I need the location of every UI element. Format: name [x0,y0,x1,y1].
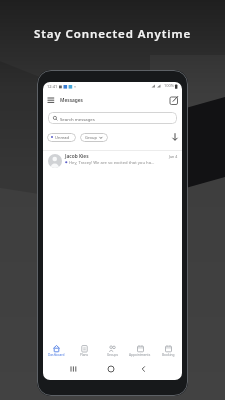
staticText: Groups [107,353,118,357]
staticText: Stay Connected Anytime [0,26,225,42]
button[interactable]: Dashboard [43,344,70,360]
button[interactable] [45,94,57,106]
button[interactable]: Plans [70,344,98,360]
staticText: Jun 4 [169,154,178,159]
staticText: Search messages [60,116,95,122]
button[interactable]: Jacob Kies [43,150,182,170]
staticText: Dashboard [48,353,65,357]
staticText: Jacob Kies [65,153,89,160]
staticText: Hey, Tracey! We are so excited that you … [69,160,155,166]
staticText: Plans [80,353,89,357]
button[interactable]: Unread [47,133,76,142]
button[interactable]: Group [80,133,108,142]
button[interactable]: Booking [154,344,182,360]
button[interactable]: Search messages [48,112,177,124]
staticText: Unread [55,135,69,140]
button[interactable] [168,94,180,106]
staticText: Appointments [129,353,151,357]
button[interactable]: Groups [98,344,126,360]
staticText: Messages [60,97,83,104]
button[interactable] [170,131,180,143]
staticText: Group [85,135,97,140]
staticText: 100% [164,83,175,88]
staticText: 12:41 [47,84,58,89]
button[interactable]: Appointments [126,344,154,360]
staticText: Booking [162,353,175,357]
